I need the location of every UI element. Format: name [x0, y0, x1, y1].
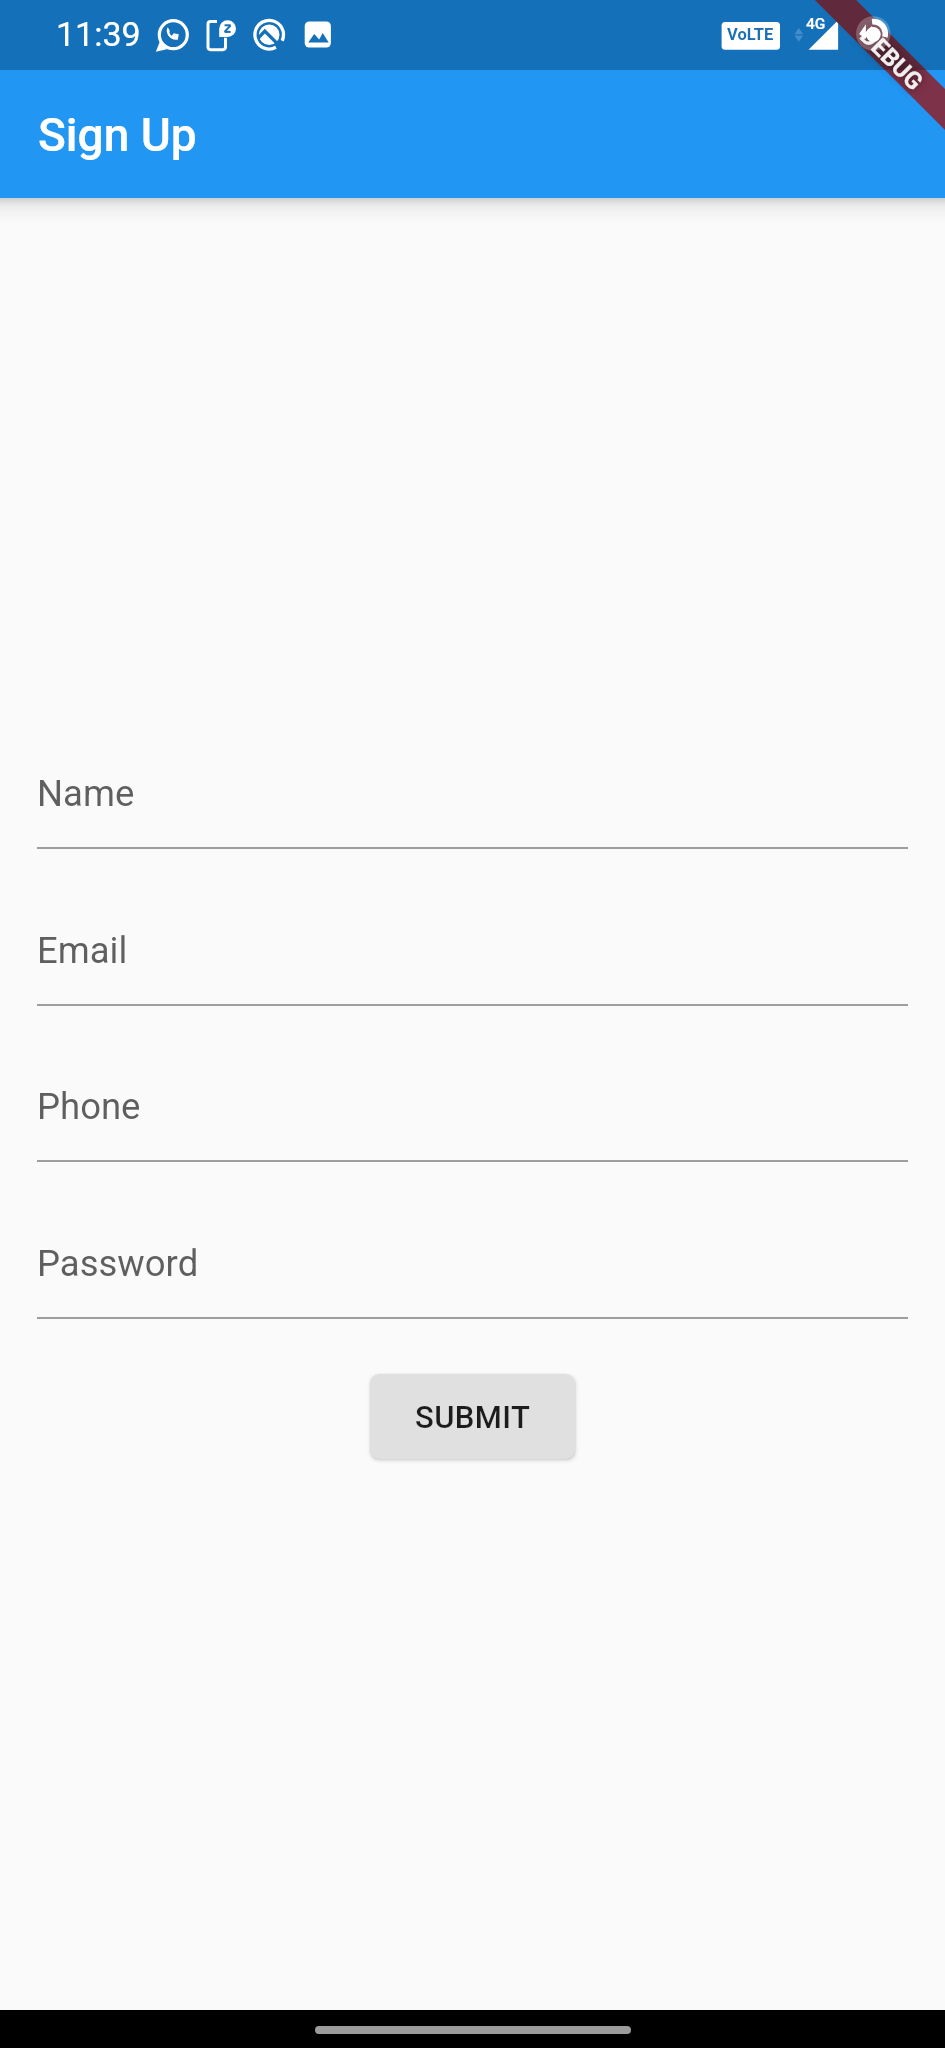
staticText: SUBMIT — [415, 1399, 531, 1435]
staticText: Phone — [37, 1085, 141, 1128]
staticText: Sign Up — [38, 108, 197, 162]
button[interactable]: Name — [37, 772, 908, 848]
staticText: DEBUG — [854, 22, 929, 96]
staticText: Email — [37, 929, 128, 972]
button[interactable]: Password — [37, 1242, 908, 1318]
other: Home — [315, 2026, 631, 2034]
staticText: Password — [37, 1242, 199, 1285]
button[interactable]: Phone — [37, 1085, 908, 1161]
button[interactable]: Email — [37, 929, 908, 1005]
staticText: VoLTE — [727, 25, 774, 44]
staticText: 11:39 — [56, 14, 141, 54]
staticText: 4G — [806, 15, 826, 33]
button[interactable]: SUBMIT — [370, 1374, 575, 1459]
staticText: Name — [37, 772, 135, 815]
